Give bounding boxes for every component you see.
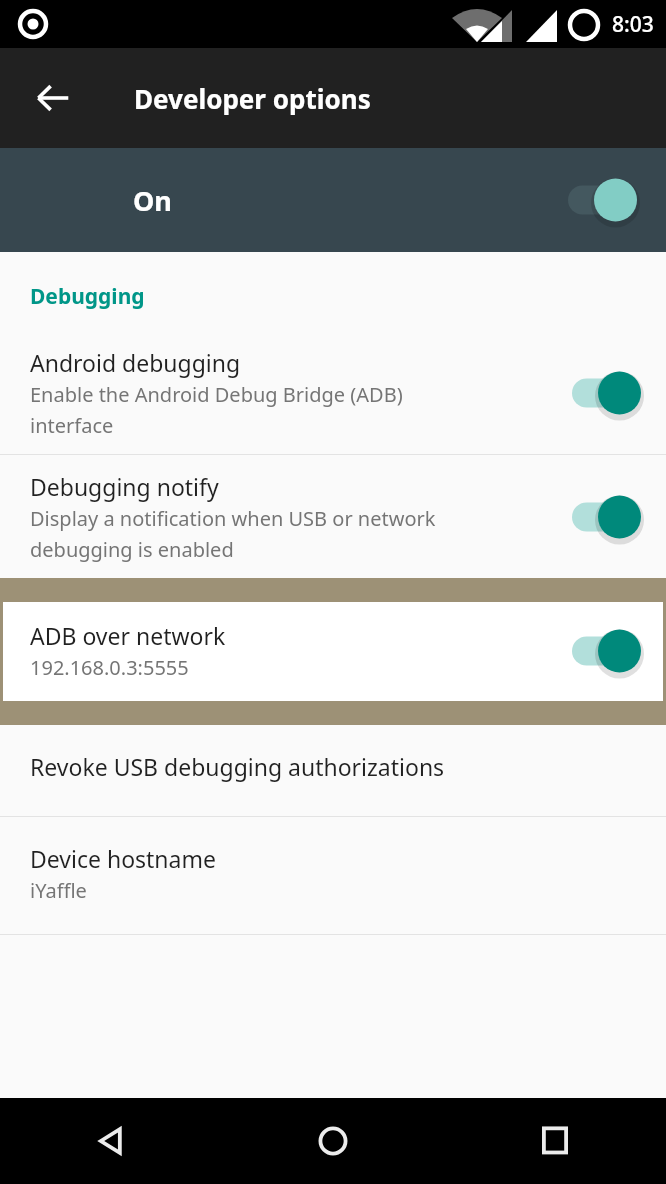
staticText: Debugging [30, 282, 145, 311]
staticText: Revoke USB debugging authorizations [30, 751, 445, 782]
staticText: 8:03 [612, 10, 654, 39]
staticText: iYaffle [30, 877, 87, 904]
button[interactable]: Android debugging [0, 341, 666, 454]
button[interactable]: Revoke USB debugging authorizations [0, 725, 666, 816]
button[interactable]: Home [222, 1098, 444, 1184]
staticText: Device hostname [30, 843, 216, 874]
staticText: On [133, 182, 172, 219]
button[interactable]: ADB over network [3, 602, 663, 701]
button[interactable]: Back [18, 63, 88, 133]
staticText: Display a notification when USB or netwo… [30, 505, 436, 562]
button[interactable]: Back [0, 1098, 222, 1184]
staticText: Debugging notify [30, 471, 219, 502]
staticText: Enable the Android Debug Bridge (ADB) in… [30, 381, 403, 438]
staticText: Android debugging [30, 347, 241, 378]
staticText: ADB over network [30, 620, 226, 651]
button[interactable]: Debugging notify [0, 455, 666, 578]
staticText: Developer options [134, 81, 371, 116]
button[interactable]: Device hostname [0, 817, 666, 934]
button[interactable]: On [0, 148, 666, 252]
button[interactable]: Recent apps [444, 1098, 666, 1184]
staticText: 192.168.0.3:5555 [30, 654, 189, 681]
